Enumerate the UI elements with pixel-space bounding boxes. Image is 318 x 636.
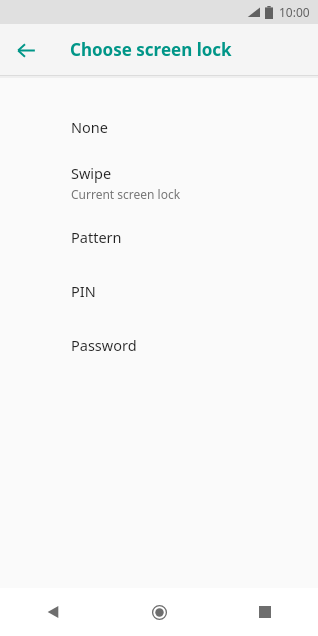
staticText: None [71, 117, 108, 137]
button[interactable]: Swipe [0, 154, 318, 210]
button[interactable]: Password [0, 318, 318, 372]
button[interactable]: None [0, 100, 318, 154]
button[interactable]: Pattern [0, 210, 318, 264]
button[interactable]: Home [106, 588, 212, 636]
staticText: Choose screen lock [70, 38, 232, 61]
staticText: Swipe [71, 163, 112, 183]
button[interactable]: Recent apps [212, 588, 318, 636]
button[interactable]: Back [10, 34, 42, 66]
staticText: 10:00 [279, 4, 310, 20]
staticText: PIN [71, 281, 96, 301]
staticText: Password [71, 335, 137, 355]
button[interactable]: Back [0, 588, 106, 636]
button[interactable]: PIN [0, 264, 318, 318]
staticText: Pattern [71, 227, 122, 247]
staticText: Current screen lock [71, 186, 181, 202]
